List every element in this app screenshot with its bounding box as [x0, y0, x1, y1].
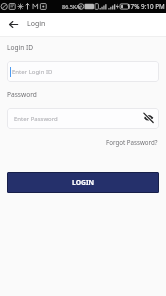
staticText: Forgot Password? — [106, 138, 158, 146]
staticText: 86.5K/s — [62, 3, 81, 10]
staticText: Enter Password — [14, 115, 58, 123]
staticText: LOGIN — [72, 178, 95, 187]
staticText: Enter Login ID — [12, 68, 53, 76]
button[interactable]: Forgot Password? — [105, 137, 159, 147]
button[interactable]: Enter Login ID — [7, 61, 159, 82]
staticText: Login ID — [7, 43, 34, 52]
button[interactable]: Back — [2, 13, 25, 36]
button[interactable]: LOGIN — [7, 172, 159, 193]
staticText: 17% 9:10 PM — [127, 2, 165, 11]
button[interactable]: Show password — [142, 111, 155, 124]
staticText: Login — [27, 19, 46, 29]
staticText: Password — [7, 90, 37, 99]
button[interactable]: Enter Password — [7, 108, 159, 129]
